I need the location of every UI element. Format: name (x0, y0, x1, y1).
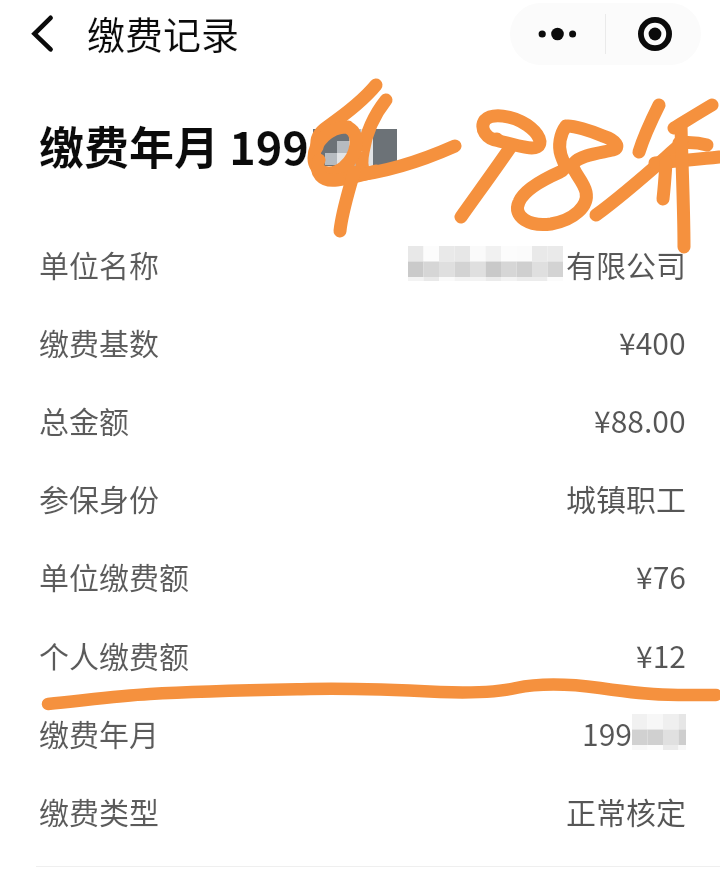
staticText: ¥76 (636, 554, 686, 597)
button[interactable]: 单位缴费额 (0, 536, 720, 614)
staticText: ¥88.00 (594, 398, 686, 441)
staticText: 缴费年月 199 (39, 113, 309, 169)
staticText: 缴费记录 (87, 5, 240, 60)
staticText: 缴费基数 (39, 320, 159, 363)
button[interactable]: 单位名称 (0, 224, 720, 302)
button[interactable]: 缴费类型 (0, 771, 720, 849)
staticText: 参保身份 (39, 476, 159, 519)
button[interactable]: More options (510, 3, 605, 65)
button[interactable]: 参保身份 (0, 458, 720, 536)
staticText: 单位缴费额 (39, 554, 189, 597)
staticText: 缴费年月 (39, 711, 159, 754)
staticText: 单位名称 (39, 242, 159, 285)
staticText: 总金额 (39, 398, 129, 441)
staticText: 城镇职工 (566, 476, 686, 519)
staticText: 个人缴费额 (39, 633, 189, 676)
staticText: 199 (582, 711, 632, 754)
button[interactable]: 个人缴费额 (0, 615, 720, 693)
staticText: ¥12 (636, 633, 686, 676)
staticText: ¥400 (619, 320, 686, 363)
button[interactable]: 缴费年月 (0, 693, 720, 771)
button[interactable]: Close mini program (606, 3, 701, 65)
staticText: 有限公司 (566, 242, 686, 285)
staticText: 正常核定 (566, 789, 686, 832)
button[interactable]: 缴费基数 (0, 302, 720, 380)
button[interactable]: 总金额 (0, 380, 720, 458)
staticText: 缴费类型 (39, 789, 159, 832)
button[interactable]: Back (19, 14, 65, 60)
